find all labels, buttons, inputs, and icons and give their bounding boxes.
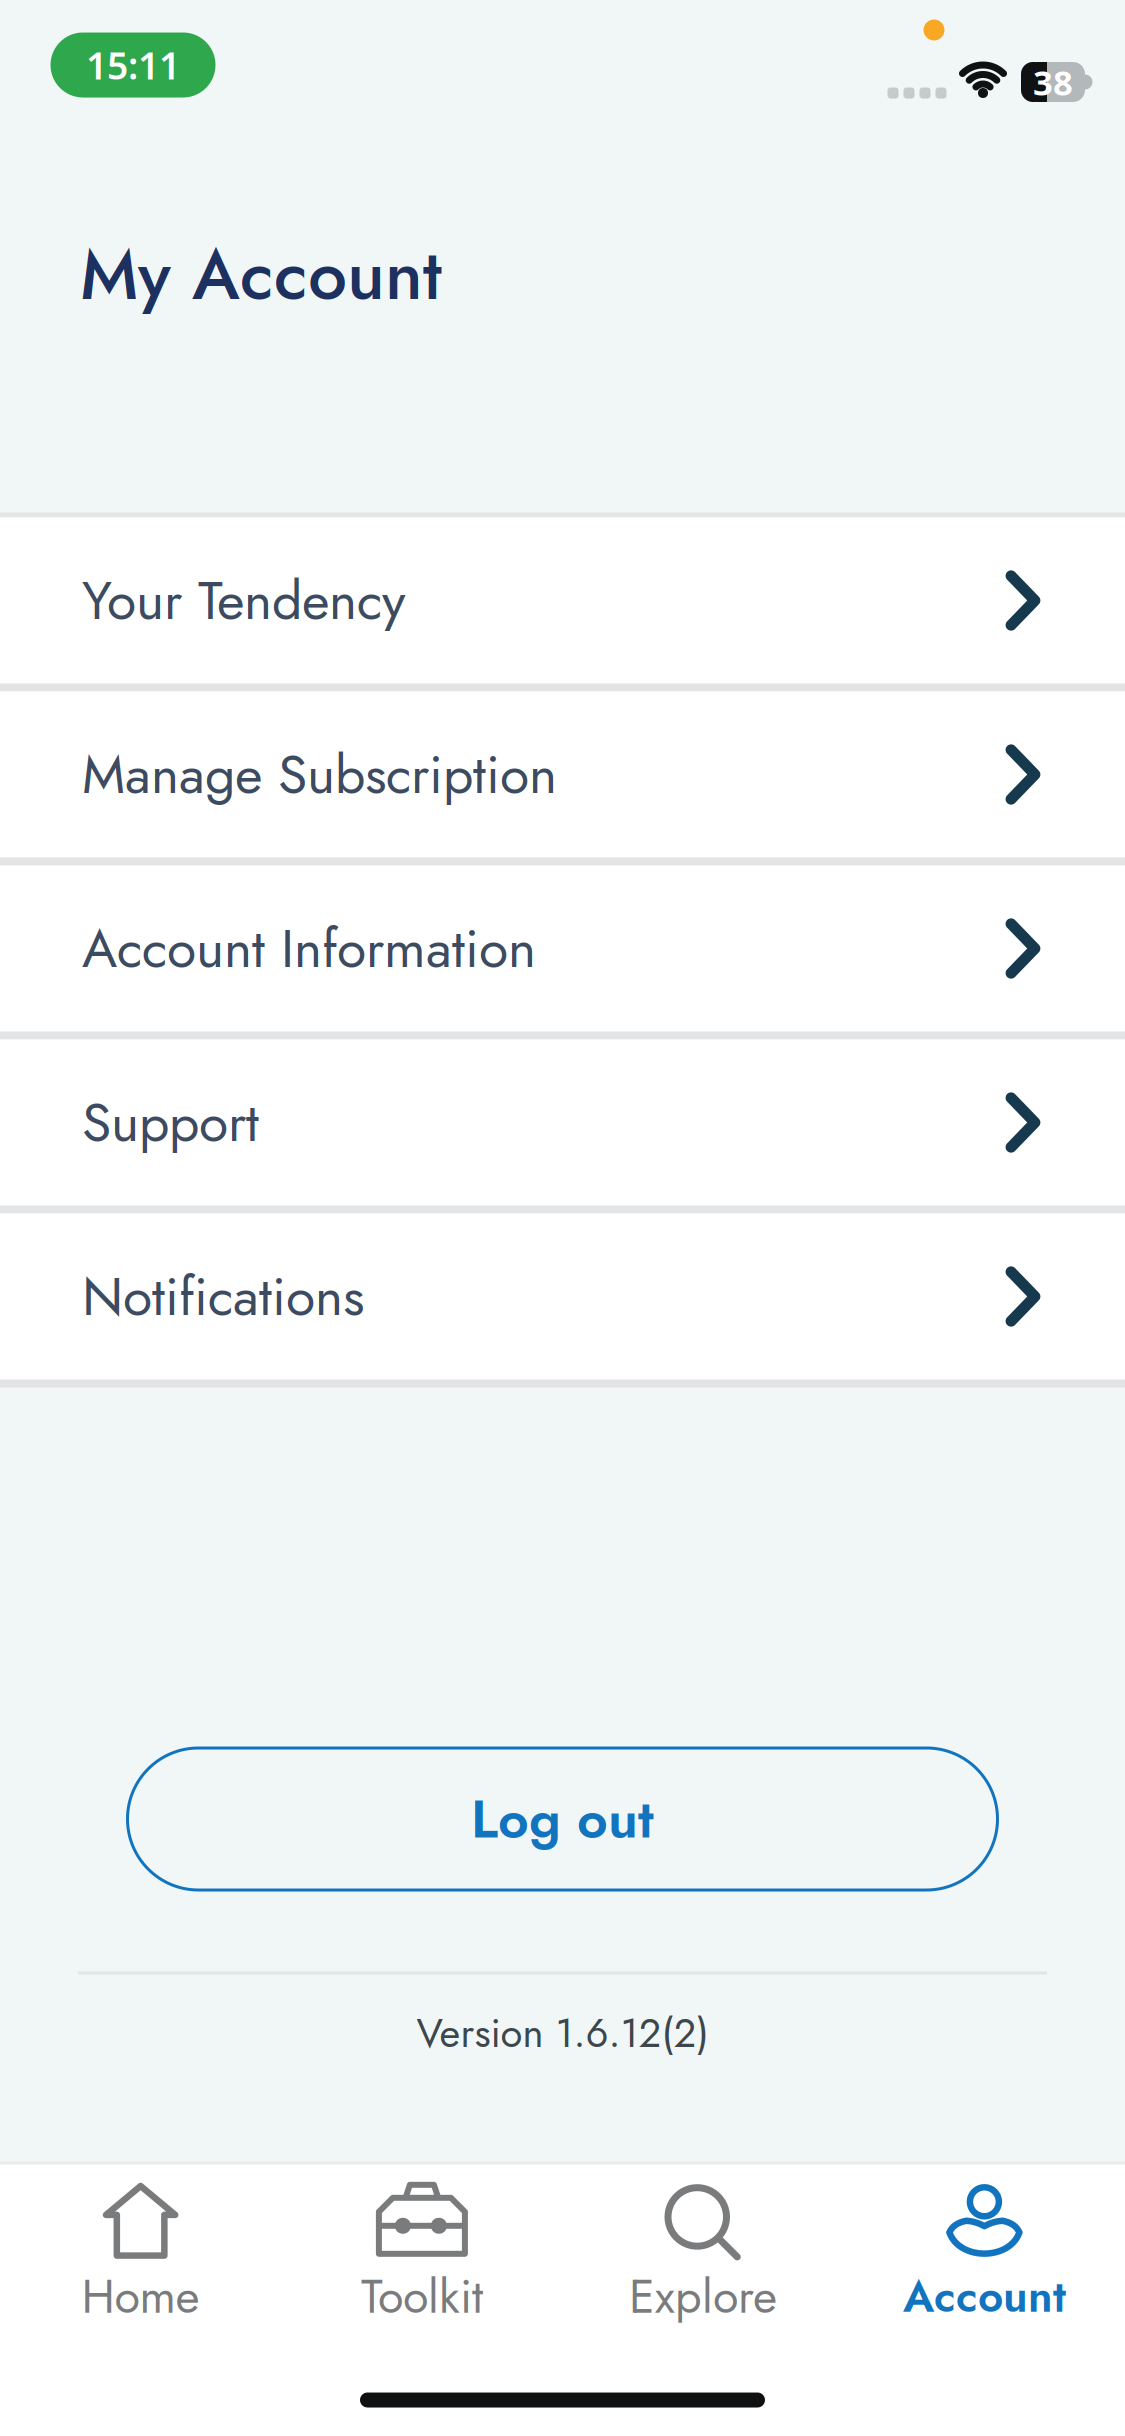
staticText: 15:11 (86, 40, 180, 90)
staticText: Log out (471, 1780, 654, 1858)
staticText: My Account (80, 225, 442, 325)
button[interactable]: Home (6, 2164, 276, 2350)
staticText: Version 1.6.12(2) (416, 2004, 708, 2062)
staticText: Explore (629, 2263, 777, 2330)
button[interactable]: Manage Subscription (0, 691, 1125, 857)
staticText: 38 (1033, 59, 1073, 105)
button[interactable]: Notifications (0, 1213, 1125, 1379)
button[interactable]: Account (849, 2164, 1119, 2350)
staticText: Notifications (82, 1258, 364, 1335)
staticText: Your Tendency (82, 562, 405, 639)
button[interactable]: Toolkit (287, 2164, 557, 2350)
staticText: Account (903, 2265, 1066, 2328)
button[interactable]: Explore (568, 2164, 838, 2350)
staticText: Account Information (82, 910, 536, 987)
button[interactable]: Log out (127, 1748, 997, 1890)
button[interactable]: Your Tendency (0, 517, 1125, 683)
staticText: Home (82, 2263, 200, 2330)
staticText: Support (82, 1084, 259, 1161)
staticText: Toolkit (361, 2263, 483, 2330)
button[interactable]: Support (0, 1039, 1125, 1205)
staticText: Manage Subscription (82, 736, 557, 813)
button[interactable]: Account Information (0, 865, 1125, 1031)
